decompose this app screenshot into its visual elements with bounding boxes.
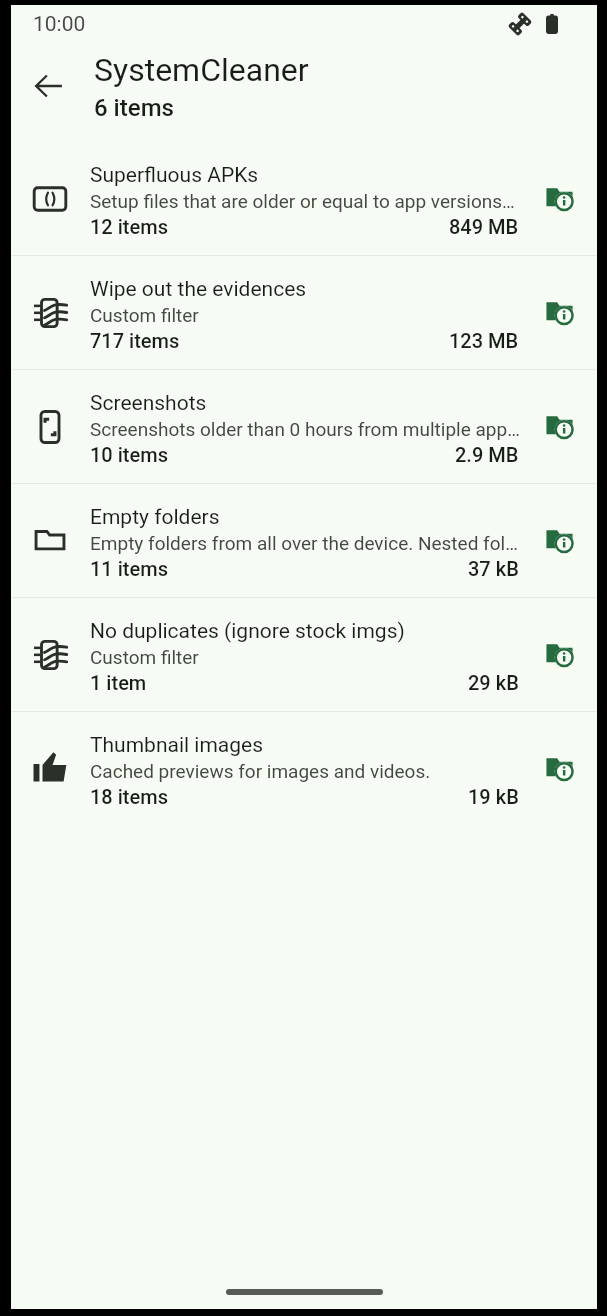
button[interactable]: Thumbnail images	[11, 712, 597, 825]
staticText: Screenshots older than 0 hours from mult…	[90, 418, 520, 440]
staticText: 2.9 MB	[455, 443, 519, 466]
staticText: Thumbnail images	[90, 733, 264, 758]
staticText: No duplicates (ignore stock imgs)	[90, 619, 405, 644]
staticText: Empty folders from all over the device. …	[90, 532, 518, 554]
staticText: 37 kB	[468, 557, 519, 580]
staticText: Screenshots	[90, 391, 207, 416]
button[interactable]: Superfluous APKs	[11, 142, 597, 255]
staticText: Setup files that are older or equal to a…	[90, 190, 515, 212]
staticText: Cached previews for images and videos.	[90, 760, 431, 782]
staticText: Empty folders	[90, 505, 220, 530]
button[interactable]: Screenshots	[11, 370, 597, 483]
staticText: Custom filter	[90, 304, 199, 326]
staticText: 1 item	[90, 671, 147, 694]
button[interactable]: Empty folders	[11, 484, 597, 597]
staticText: 10 items	[90, 443, 168, 466]
staticText: 19 kB	[468, 785, 519, 808]
staticText: SystemCleaner	[94, 51, 309, 89]
staticText: 123 MB	[449, 329, 519, 352]
button[interactable]: No duplicates (ignore stock imgs)	[11, 598, 597, 711]
button[interactable]: Details	[539, 519, 579, 559]
staticText: 10:00	[33, 12, 86, 37]
button[interactable]: Details	[539, 405, 579, 445]
staticText: 717 items	[90, 329, 180, 352]
button[interactable]: Details	[539, 633, 579, 673]
button[interactable]: Details	[539, 747, 579, 787]
staticText: Wipe out the evidences	[90, 277, 307, 302]
staticText: Superfluous APKs	[90, 163, 259, 188]
staticText: 12 items	[90, 215, 168, 238]
button[interactable]: Details	[539, 177, 579, 217]
staticText: 11 items	[90, 557, 168, 580]
staticText: 849 MB	[449, 215, 519, 238]
staticText: 18 items	[90, 785, 168, 808]
staticText: 29 kB	[468, 671, 519, 694]
staticText: Custom filter	[90, 646, 199, 668]
staticText: 6 items	[94, 94, 174, 122]
button[interactable]: Back	[21, 58, 77, 114]
button[interactable]: Details	[539, 291, 579, 331]
button[interactable]: Wipe out the evidences	[11, 256, 597, 369]
